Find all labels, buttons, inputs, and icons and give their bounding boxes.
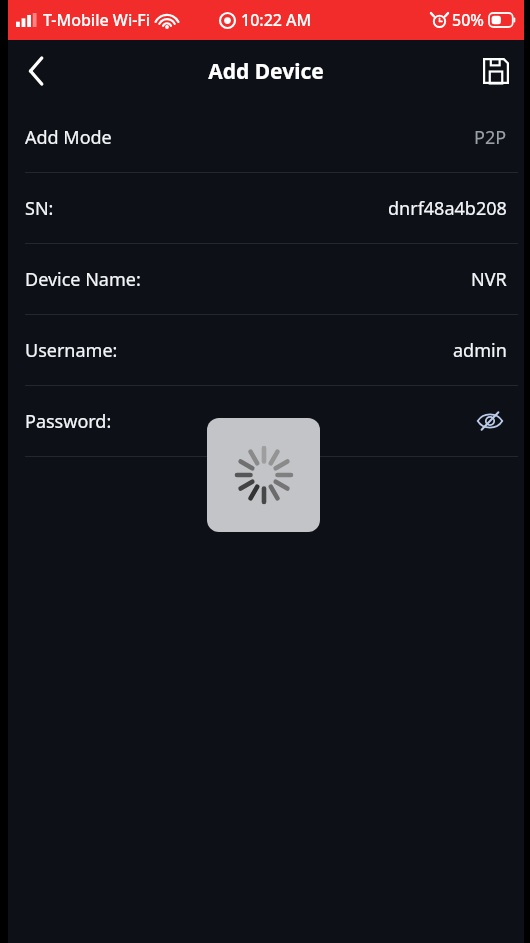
button[interactable]: Device Name: <box>8 244 524 314</box>
staticText: dnrf48a4b208 <box>388 196 507 221</box>
staticText: Add Mode <box>25 125 112 150</box>
button[interactable]: Back <box>8 43 64 99</box>
button[interactable]: Password: <box>8 386 524 456</box>
staticText: T-Mobile Wi-Fi <box>43 9 151 31</box>
staticText: 10:22 AM <box>241 9 312 31</box>
button[interactable]: Username: <box>8 315 524 385</box>
staticText: Password: <box>25 409 112 434</box>
staticText: NVR <box>471 267 507 292</box>
staticText: 50% <box>452 9 484 31</box>
staticText: Add Device <box>208 57 324 86</box>
button[interactable]: Show password <box>473 404 507 438</box>
staticText: SN: <box>25 196 54 221</box>
staticText: Device Name: <box>25 267 141 292</box>
button[interactable]: SN: <box>8 173 524 243</box>
button[interactable]: Add Mode <box>8 102 524 172</box>
staticText: Username: <box>25 338 118 363</box>
button[interactable]: Save <box>468 43 524 99</box>
staticText: admin <box>453 338 507 363</box>
staticText: P2P <box>474 125 507 150</box>
